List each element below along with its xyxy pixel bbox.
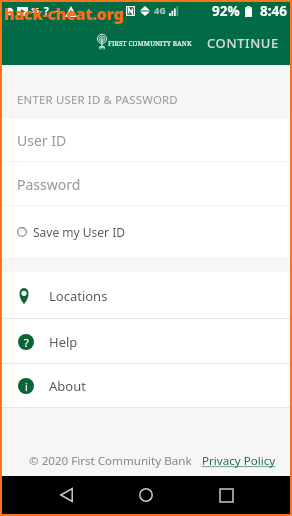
staticText: hack-cheat.org: [4, 3, 124, 25]
button[interactable]: User ID: [2, 119, 290, 162]
staticText: 8:46: [260, 2, 287, 20]
staticText: Locations: [49, 287, 108, 305]
staticText: Password: [17, 175, 81, 194]
button[interactable]: Recents: [212, 481, 240, 509]
button[interactable]: Locations: [2, 272, 290, 319]
staticText: About: [49, 377, 86, 395]
staticText: CONTINUE: [207, 34, 279, 52]
staticText: FIRST COMMUNITY BANK: [108, 39, 192, 48]
button[interactable]: Save my User ID: [2, 206, 290, 257]
staticText: i: [25, 379, 28, 394]
staticText: +: [55, 5, 61, 17]
staticText: ?: [24, 335, 29, 350]
button[interactable]: Privacy Policy: [202, 453, 276, 469]
staticText: Save my User ID: [33, 224, 125, 240]
staticText: Help: [49, 333, 78, 351]
button[interactable]: i: [2, 364, 290, 408]
button[interactable]: CONTINUE: [197, 22, 290, 64]
staticText: User ID: [17, 131, 67, 150]
staticText: ENTER USER ID & PASSWORD: [17, 92, 178, 108]
staticText: Privacy Policy: [202, 453, 276, 469]
staticText: 15: [31, 6, 40, 16]
staticText: 4G: [154, 4, 166, 16]
button[interactable]: ?: [2, 319, 290, 364]
staticText: 92%: [212, 2, 240, 20]
button[interactable]: Home: [132, 481, 160, 509]
staticText: © 2020 First Community Bank: [29, 453, 192, 469]
staticText: ?: [44, 4, 49, 18]
button[interactable]: Password: [2, 162, 290, 206]
button[interactable]: Back: [52, 481, 80, 509]
